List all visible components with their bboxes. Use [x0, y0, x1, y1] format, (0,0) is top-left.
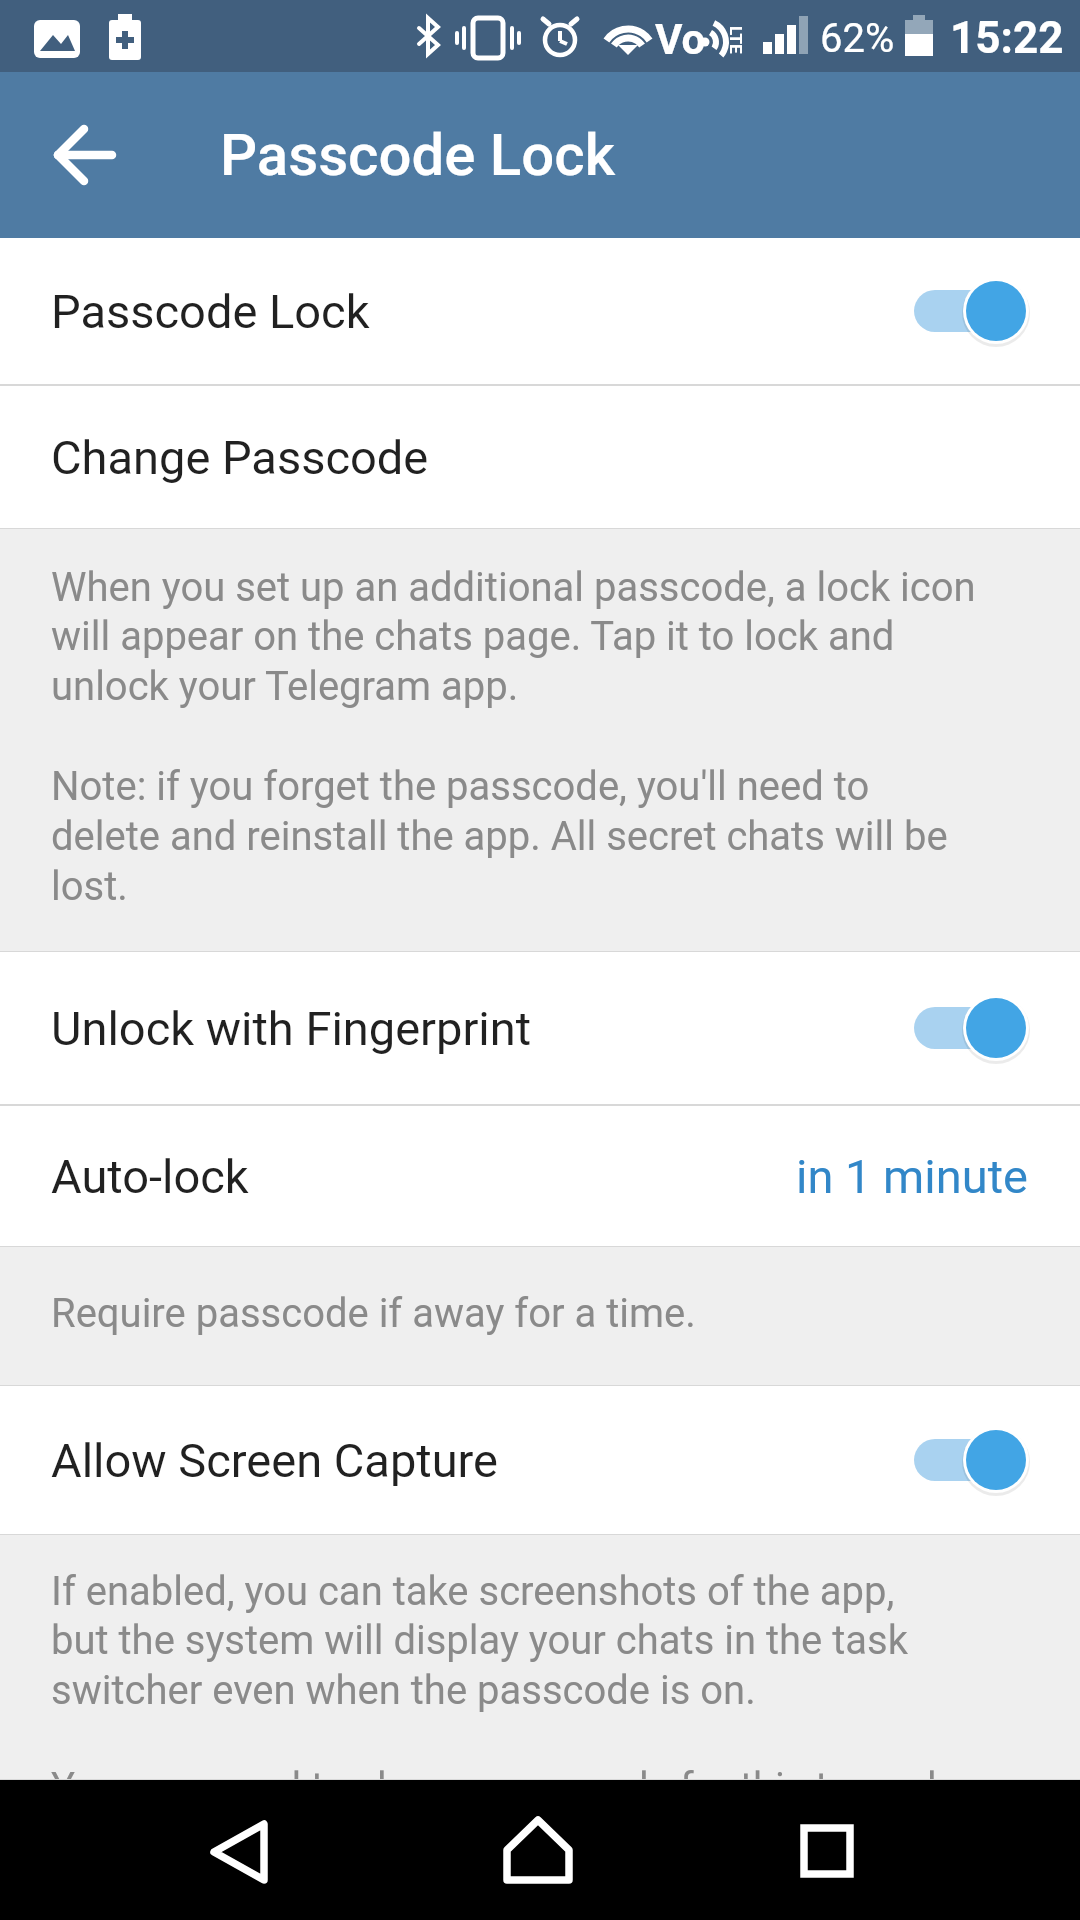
- staticText: Vo: [655, 15, 706, 64]
- button[interactable]: [50, 120, 120, 190]
- staticText: Allow Screen Capture: [51, 1433, 499, 1488]
- staticText: Change Passcode: [51, 430, 429, 485]
- staticText: LTE: [726, 26, 746, 54]
- button[interactable]: Auto-lock: [0, 1106, 1080, 1246]
- staticText: 62%: [820, 15, 895, 62]
- button[interactable]: [0, 1780, 360, 1920]
- button[interactable]: Allow Screen Capture: [0, 1386, 1080, 1534]
- button[interactable]: [720, 1780, 1080, 1920]
- staticText: Require passcode if away for a time.: [51, 1290, 696, 1337]
- staticText: in 1 minute: [796, 1149, 1028, 1204]
- staticText: Unlock with Fingerprint: [51, 1001, 532, 1056]
- staticText: When you set up an additional passcode, …: [51, 564, 976, 910]
- staticText: You may need to change passcode for this…: [51, 1764, 958, 1811]
- staticText: 15:22: [950, 12, 1064, 64]
- staticText: Auto-lock: [51, 1149, 249, 1204]
- button[interactable]: Change Passcode: [0, 386, 1080, 528]
- button[interactable]: Passcode Lock: [0, 238, 1080, 384]
- staticText: If enabled, you can take screenshots of …: [51, 1568, 908, 1714]
- button[interactable]: [360, 1780, 720, 1920]
- staticText: Passcode Lock: [220, 121, 615, 189]
- staticText: Passcode Lock: [51, 284, 370, 339]
- button[interactable]: Unlock with Fingerprint: [0, 952, 1080, 1104]
